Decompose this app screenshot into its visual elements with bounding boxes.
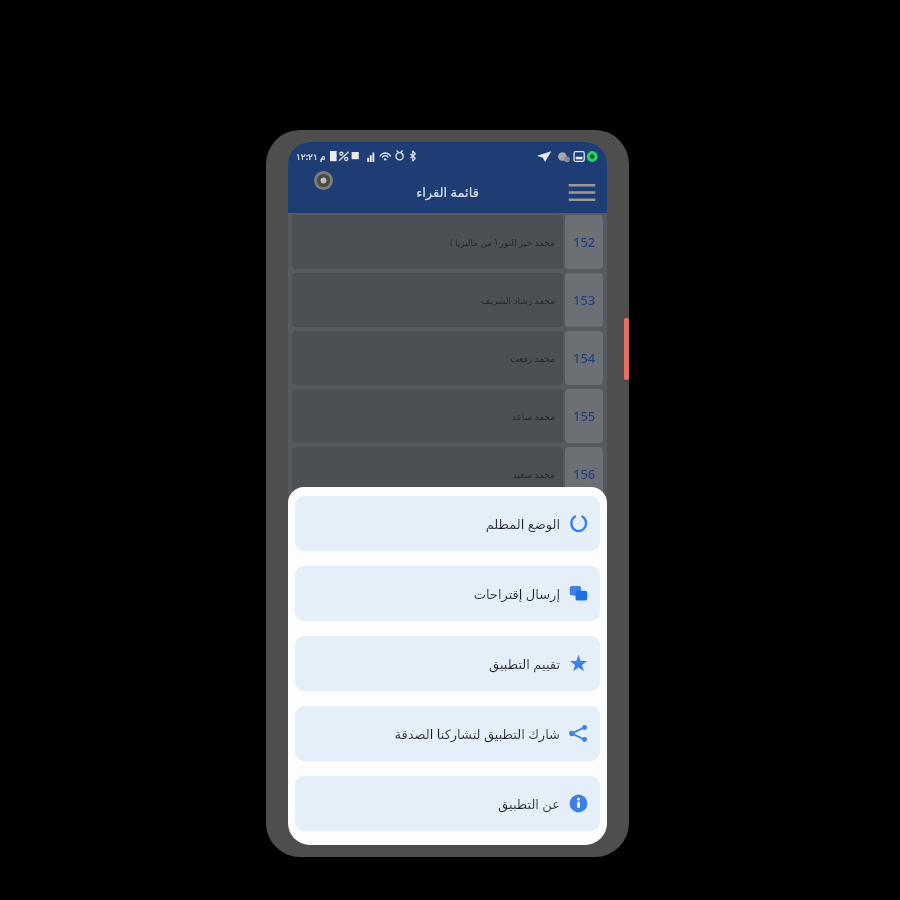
button[interactable]: الوضع المطلم xyxy=(295,496,600,551)
staticText: محمد خير النور ( من ماليزيا ) xyxy=(449,236,555,248)
staticText: محمد رشاد الشريف xyxy=(481,294,555,306)
button[interactable]: Menu xyxy=(565,175,599,209)
staticText: عن التطبيق xyxy=(498,795,560,813)
staticText: 155 xyxy=(573,407,596,425)
staticText: 153 xyxy=(573,291,596,309)
staticText: الوضع المطلم xyxy=(485,515,560,533)
staticText: محمد رفعت xyxy=(510,352,555,364)
staticText: 152 xyxy=(573,233,596,251)
staticText: تقييم التطبيق xyxy=(489,655,560,673)
button[interactable]: محمد ساعد xyxy=(292,389,603,443)
staticText: 156 xyxy=(573,465,596,483)
staticText: 154 xyxy=(573,349,596,367)
staticText: قائمة القراء xyxy=(416,183,479,201)
button[interactable]: محمد رفعت xyxy=(292,331,603,385)
button[interactable]: محمد سعيد xyxy=(292,447,603,501)
staticText: 157 xyxy=(573,523,596,541)
staticText: م ١٢:٢١ xyxy=(296,150,326,162)
button[interactable]: شارك التطبيق لتشاركنا الصدقة xyxy=(295,706,600,761)
button[interactable]: محمد صديق xyxy=(292,505,603,559)
button[interactable]: إرسال إقتراحات xyxy=(295,566,600,621)
button[interactable]: تقييم التطبيق xyxy=(295,636,600,691)
staticText: إرسال إقتراحات xyxy=(473,585,560,603)
button[interactable]: محمد خير النور ( من ماليزيا ) xyxy=(292,215,603,269)
staticText: محمد سعيد xyxy=(512,468,555,480)
staticText: شارك التطبيق لتشاركنا الصدقة xyxy=(394,725,560,743)
staticText: محمد صديق xyxy=(509,526,555,538)
button[interactable]: محمد رشاد الشريف xyxy=(292,273,603,327)
button[interactable]: عن التطبيق xyxy=(295,776,600,831)
staticText: محمد ساعد xyxy=(511,410,555,422)
